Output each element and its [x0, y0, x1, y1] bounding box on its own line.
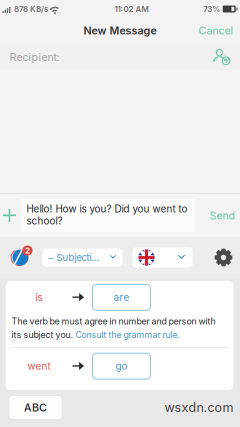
- staticText: wsxdn.com: [164, 400, 233, 415]
- staticText: its subject you.: [11, 329, 75, 340]
- staticText: Subjecti…: [56, 252, 99, 263]
- staticText: 2: [25, 246, 30, 255]
- button[interactable]: Settings: [212, 245, 234, 269]
- staticText: ABC: [24, 401, 47, 414]
- button[interactable]: Add recipient: [209, 44, 233, 70]
- button[interactable]: go: [92, 353, 150, 379]
- staticText: 11:02 AM: [115, 4, 149, 14]
- button[interactable]: –: [42, 248, 122, 266]
- staticText: are: [113, 291, 129, 303]
- staticText: 878 KB/s: [14, 4, 48, 14]
- staticText: Hello! How is you? Did you went to schoo…: [26, 203, 187, 227]
- staticText: Send: [209, 209, 235, 222]
- staticText: Consult the grammar rule.: [75, 329, 180, 340]
- staticText: The verb be must agree in number and per…: [11, 316, 215, 326]
- button[interactable]: are: [92, 284, 150, 310]
- staticText: go: [115, 360, 127, 372]
- staticText: New Message: [83, 24, 156, 37]
- staticText: –: [48, 252, 53, 263]
- staticText: is: [35, 291, 42, 303]
- staticText: Cancel: [198, 24, 233, 37]
- button[interactable]: ABC: [9, 396, 61, 419]
- staticText: went: [27, 360, 50, 372]
- button[interactable]: Add attachment: [0, 194, 21, 237]
- button[interactable]: [132, 247, 192, 267]
- button[interactable]: Consult the grammar rule.: [75, 329, 180, 340]
- button[interactable]: Send: [202, 194, 240, 237]
- staticText: Recipient:: [9, 50, 59, 63]
- button[interactable]: Ginger corrections: [7, 244, 33, 270]
- button[interactable]: Cancel: [189, 18, 240, 43]
- staticText: 73%: [203, 4, 220, 14]
